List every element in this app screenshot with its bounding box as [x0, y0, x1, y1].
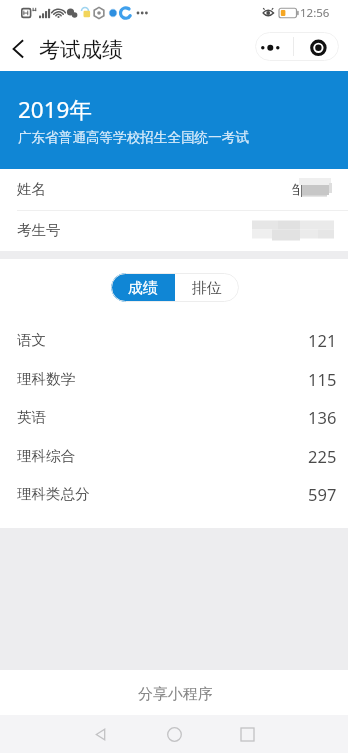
- button[interactable]: 语文: [0, 320, 348, 358]
- button[interactable]: 理科类总分: [0, 474, 348, 512]
- staticText: 2019年: [18, 94, 92, 125]
- staticText: 广东省普通高等学校招生全国统一考试: [18, 129, 250, 146]
- button[interactable]: Back: [1, 32, 35, 66]
- button[interactable]: 排位: [175, 273, 239, 302]
- button[interactable]: More options: [255, 32, 293, 61]
- staticText: 邹: [292, 181, 307, 199]
- button[interactable]: 理科综合: [0, 436, 348, 474]
- button[interactable]: Home: [156, 716, 192, 752]
- staticText: 分享小程序: [138, 685, 213, 704]
- button[interactable]: 英语: [0, 397, 348, 435]
- button[interactable]: Close mini program: [294, 32, 339, 61]
- staticText: 英语: [17, 408, 46, 426]
- staticText: 姓名: [17, 180, 46, 198]
- button[interactable]: 分享小程序: [0, 670, 348, 715]
- button[interactable]: Back: [82, 716, 118, 752]
- button[interactable]: 成绩: [111, 273, 175, 302]
- staticText: 考生号: [17, 221, 61, 239]
- staticText: 136: [308, 406, 337, 428]
- staticText: 121: [308, 329, 337, 351]
- staticText: 语文: [17, 331, 46, 349]
- staticText: 115: [308, 368, 337, 390]
- button[interactable]: 考生号: [0, 210, 348, 251]
- staticText: 排位: [192, 279, 222, 298]
- button[interactable]: 姓名: [0, 169, 348, 210]
- staticText: 考试成绩: [39, 37, 123, 63]
- button[interactable]: 理科数学: [0, 359, 348, 397]
- staticText: 成绩: [128, 279, 158, 298]
- staticText: 理科类总分: [17, 485, 90, 503]
- staticText: 理科数学: [17, 370, 75, 388]
- button[interactable]: Recent apps: [229, 716, 265, 752]
- staticText: 12:56: [300, 5, 330, 21]
- staticText: 理科综合: [17, 447, 75, 465]
- staticText: 225: [308, 445, 337, 467]
- staticText: 597: [308, 483, 337, 505]
